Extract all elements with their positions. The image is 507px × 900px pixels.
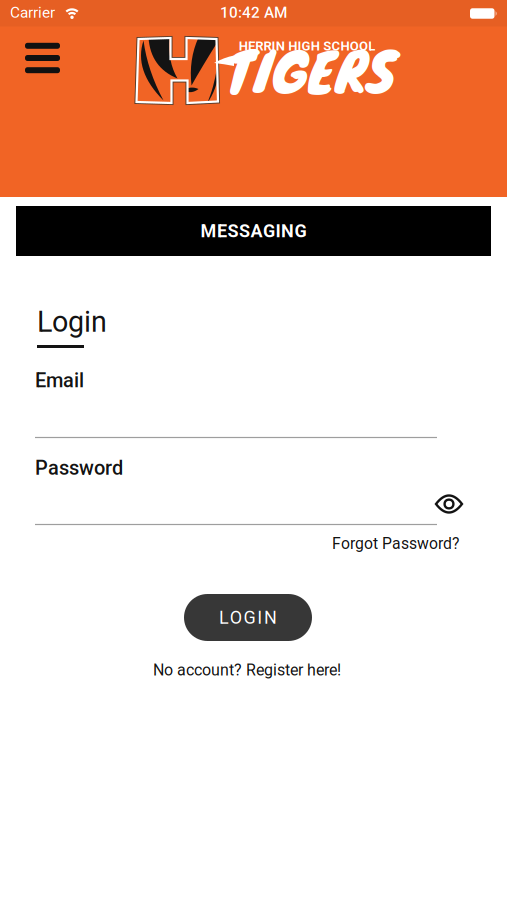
button[interactable]: LOGIN: [184, 594, 312, 641]
staticText: Forgot Password?: [332, 534, 459, 553]
button[interactable]: MESSAGING: [16, 206, 491, 256]
button[interactable]: Show password: [432, 489, 466, 519]
button[interactable]: Forgot Password?: [35, 534, 459, 553]
staticText: HERRIN HIGH SCHOOL: [239, 38, 375, 54]
staticText: Login: [37, 305, 107, 339]
staticText: LOGIN: [219, 607, 277, 628]
staticText: TIGERS: [226, 29, 395, 111]
staticText: MESSAGING: [200, 220, 306, 242]
button[interactable]: No account? Register here!: [153, 661, 341, 679]
staticText: Password: [35, 456, 123, 480]
staticText: Carrier: [10, 3, 55, 21]
staticText: Email: [35, 369, 84, 392]
staticText: 10:42 AM: [220, 3, 287, 21]
button[interactable]: Menu: [20, 36, 65, 80]
staticText: No account? Register here!: [153, 661, 341, 679]
